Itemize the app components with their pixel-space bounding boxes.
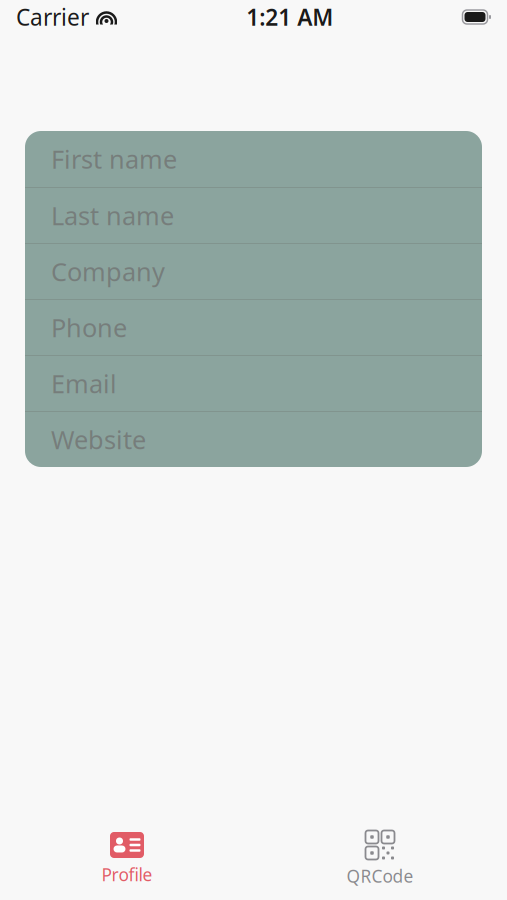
staticText: Email bbox=[51, 367, 117, 400]
staticText: Last name bbox=[51, 199, 174, 232]
staticText: Profile bbox=[101, 863, 152, 886]
button[interactable]: Last name bbox=[25, 188, 482, 244]
staticText: QRCode bbox=[346, 864, 413, 887]
staticText: Company bbox=[51, 255, 165, 288]
button[interactable]: Profile bbox=[0, 828, 253, 890]
button[interactable]: Website bbox=[25, 412, 482, 467]
button[interactable]: Company bbox=[25, 244, 482, 300]
staticText: First name bbox=[51, 142, 177, 176]
button[interactable]: First name bbox=[25, 131, 482, 188]
staticText: Website bbox=[51, 423, 146, 456]
button[interactable]: Phone bbox=[25, 300, 482, 356]
button[interactable]: QRCode bbox=[253, 828, 506, 890]
staticText: 1:21 AM bbox=[246, 2, 333, 32]
staticText: Carrier bbox=[16, 2, 89, 32]
staticText: Phone bbox=[51, 311, 127, 344]
button[interactable]: Email bbox=[25, 356, 482, 412]
